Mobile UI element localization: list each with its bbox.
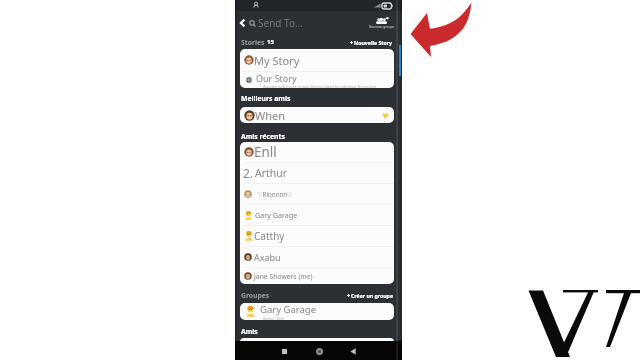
staticText: My Story	[254, 53, 300, 68]
button[interactable]: Our Story	[240, 72, 394, 88]
staticText: Amis récents	[241, 132, 285, 141]
button[interactable]: Jane Showers (me)	[240, 268, 394, 284]
button[interactable]: Nouveau groupe	[369, 17, 402, 29]
staticText: Arthur	[255, 166, 288, 180]
button[interactable]: Enll	[240, 142, 394, 162]
staticText: Meilleurs amis	[241, 94, 291, 103]
button[interactable]: 2.	[240, 163, 394, 183]
button[interactable]: When	[240, 107, 394, 123]
staticText: Gary Garage	[260, 303, 316, 316]
button[interactable]: ♡Rinnnnn♡	[240, 184, 394, 204]
button[interactable]: Back	[347, 345, 359, 357]
staticText: Axabu	[254, 251, 281, 263]
button[interactable]: Home	[313, 345, 325, 357]
button[interactable]: Nouvelle Story	[350, 39, 393, 46]
staticText: Amis	[241, 327, 258, 336]
staticText: Enll	[254, 143, 277, 161]
button[interactable]: Axabu	[240, 247, 394, 267]
button[interactable]: Gary Garage	[240, 205, 394, 225]
button[interactable]: Catthy	[240, 226, 394, 246]
staticText: Our Story	[256, 72, 297, 84]
staticText: Jane Showers (me)	[254, 272, 313, 281]
staticText: Catthy	[254, 229, 285, 243]
staticText: ♡Rinnnnn♡	[257, 190, 293, 198]
staticText: Gary Garage	[255, 210, 298, 220]
staticText: Nouveau groupe	[369, 25, 395, 29]
staticText: Stories	[241, 38, 265, 47]
staticText: When	[255, 108, 286, 123]
button[interactable]: Gary Garage	[240, 303, 394, 320]
button[interactable]: Créer un groupe	[347, 292, 393, 299]
staticText: 15	[267, 38, 274, 46]
staticText: Nouvelle Story	[354, 39, 393, 46]
staticText: Arthur, Enll	[263, 316, 284, 320]
staticText: Groupes	[241, 291, 270, 300]
staticText: Ajoutez a la Carte et aux Stories dans l…	[263, 84, 377, 88]
staticText: Créer un groupe	[351, 292, 393, 299]
staticText: Send To...	[258, 16, 304, 30]
staticText: 2.	[243, 165, 254, 181]
button[interactable]: My Story	[240, 49, 394, 71]
button[interactable]: Recents	[278, 345, 290, 357]
button[interactable]: Back	[235, 16, 249, 30]
